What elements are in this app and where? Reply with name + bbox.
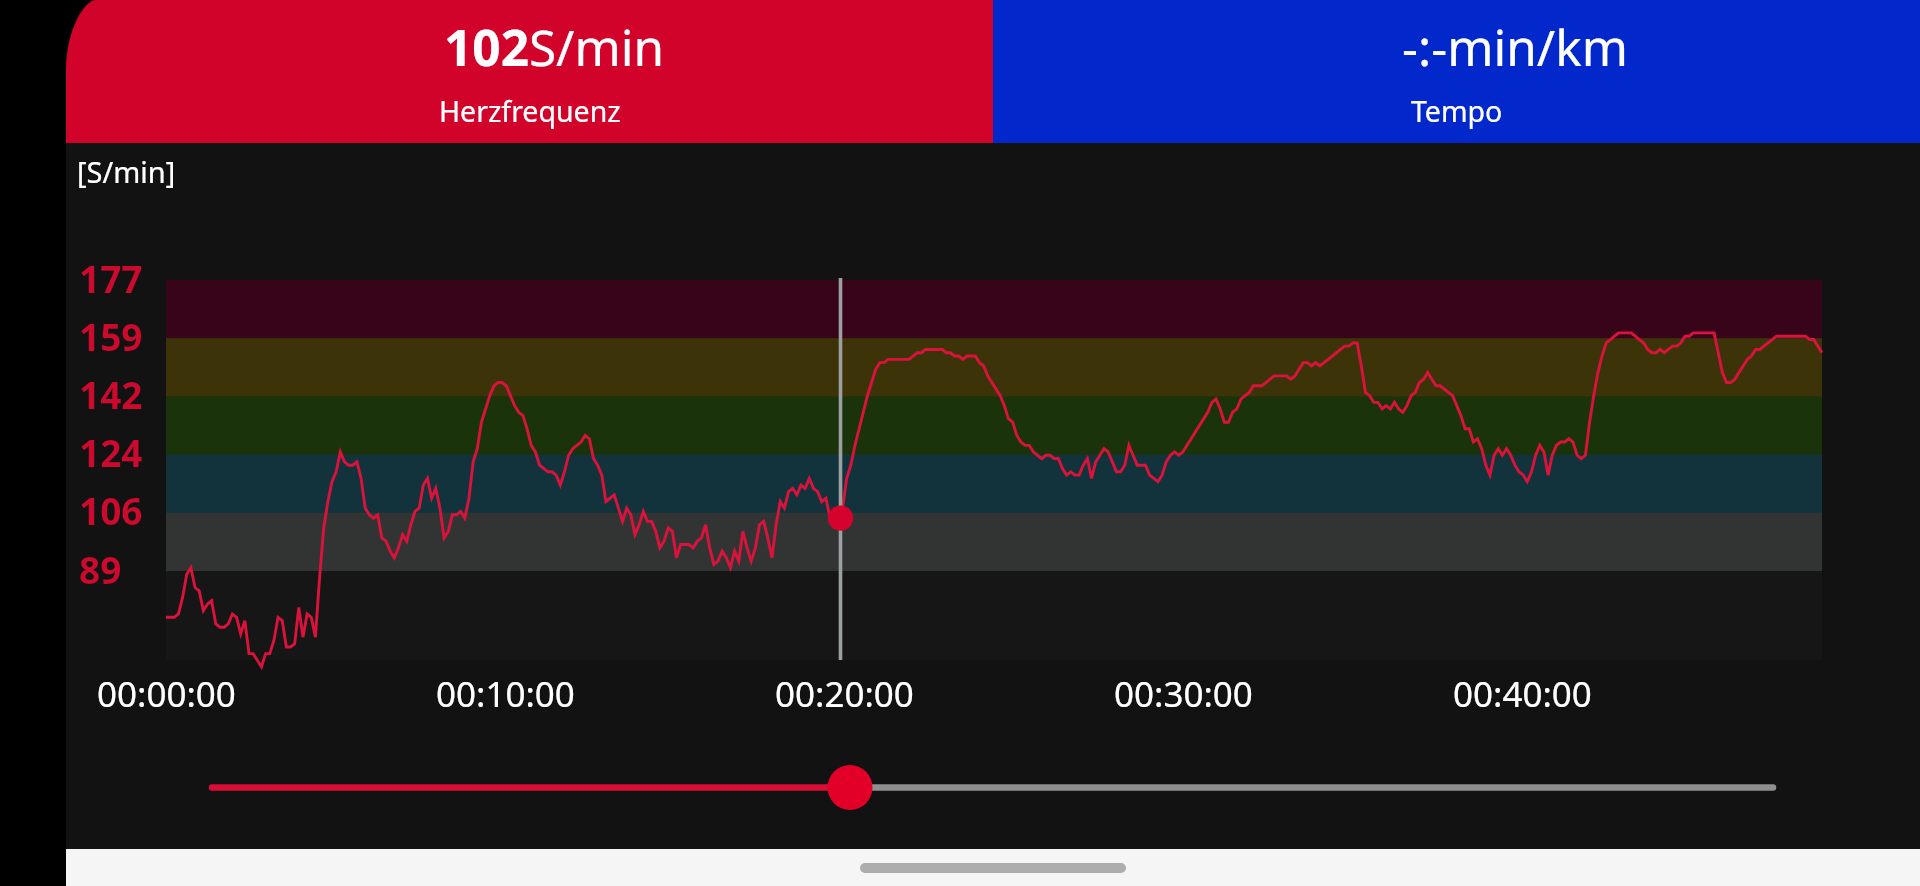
staticText: 102S/min: [444, 13, 665, 80]
button[interactable]: -:-min/km: [993, 0, 1920, 143]
staticText: 89: [79, 544, 122, 594]
staticText: 00:00:00: [97, 670, 236, 718]
staticText: 00:30:00: [1114, 670, 1253, 718]
staticText: 159: [79, 311, 143, 361]
staticText: 00:40:00: [1453, 670, 1592, 718]
staticText: 124: [79, 427, 143, 477]
button[interactable]: 102S/min: [66, 0, 993, 143]
staticText: -:-min/km: [1402, 13, 1628, 80]
staticText: 106: [79, 485, 143, 535]
button[interactable]: Home: [860, 863, 1126, 873]
staticText: 142: [79, 369, 143, 419]
staticText: Tempo: [1411, 92, 1503, 131]
staticText: [S/min]: [77, 152, 176, 191]
staticText: 177: [79, 253, 143, 303]
staticText: 00:20:00: [775, 670, 914, 718]
button[interactable]: Playback position slider: [186, 763, 1799, 813]
staticText: Herzfrequenz: [439, 92, 621, 131]
staticText: 00:10:00: [436, 670, 575, 718]
